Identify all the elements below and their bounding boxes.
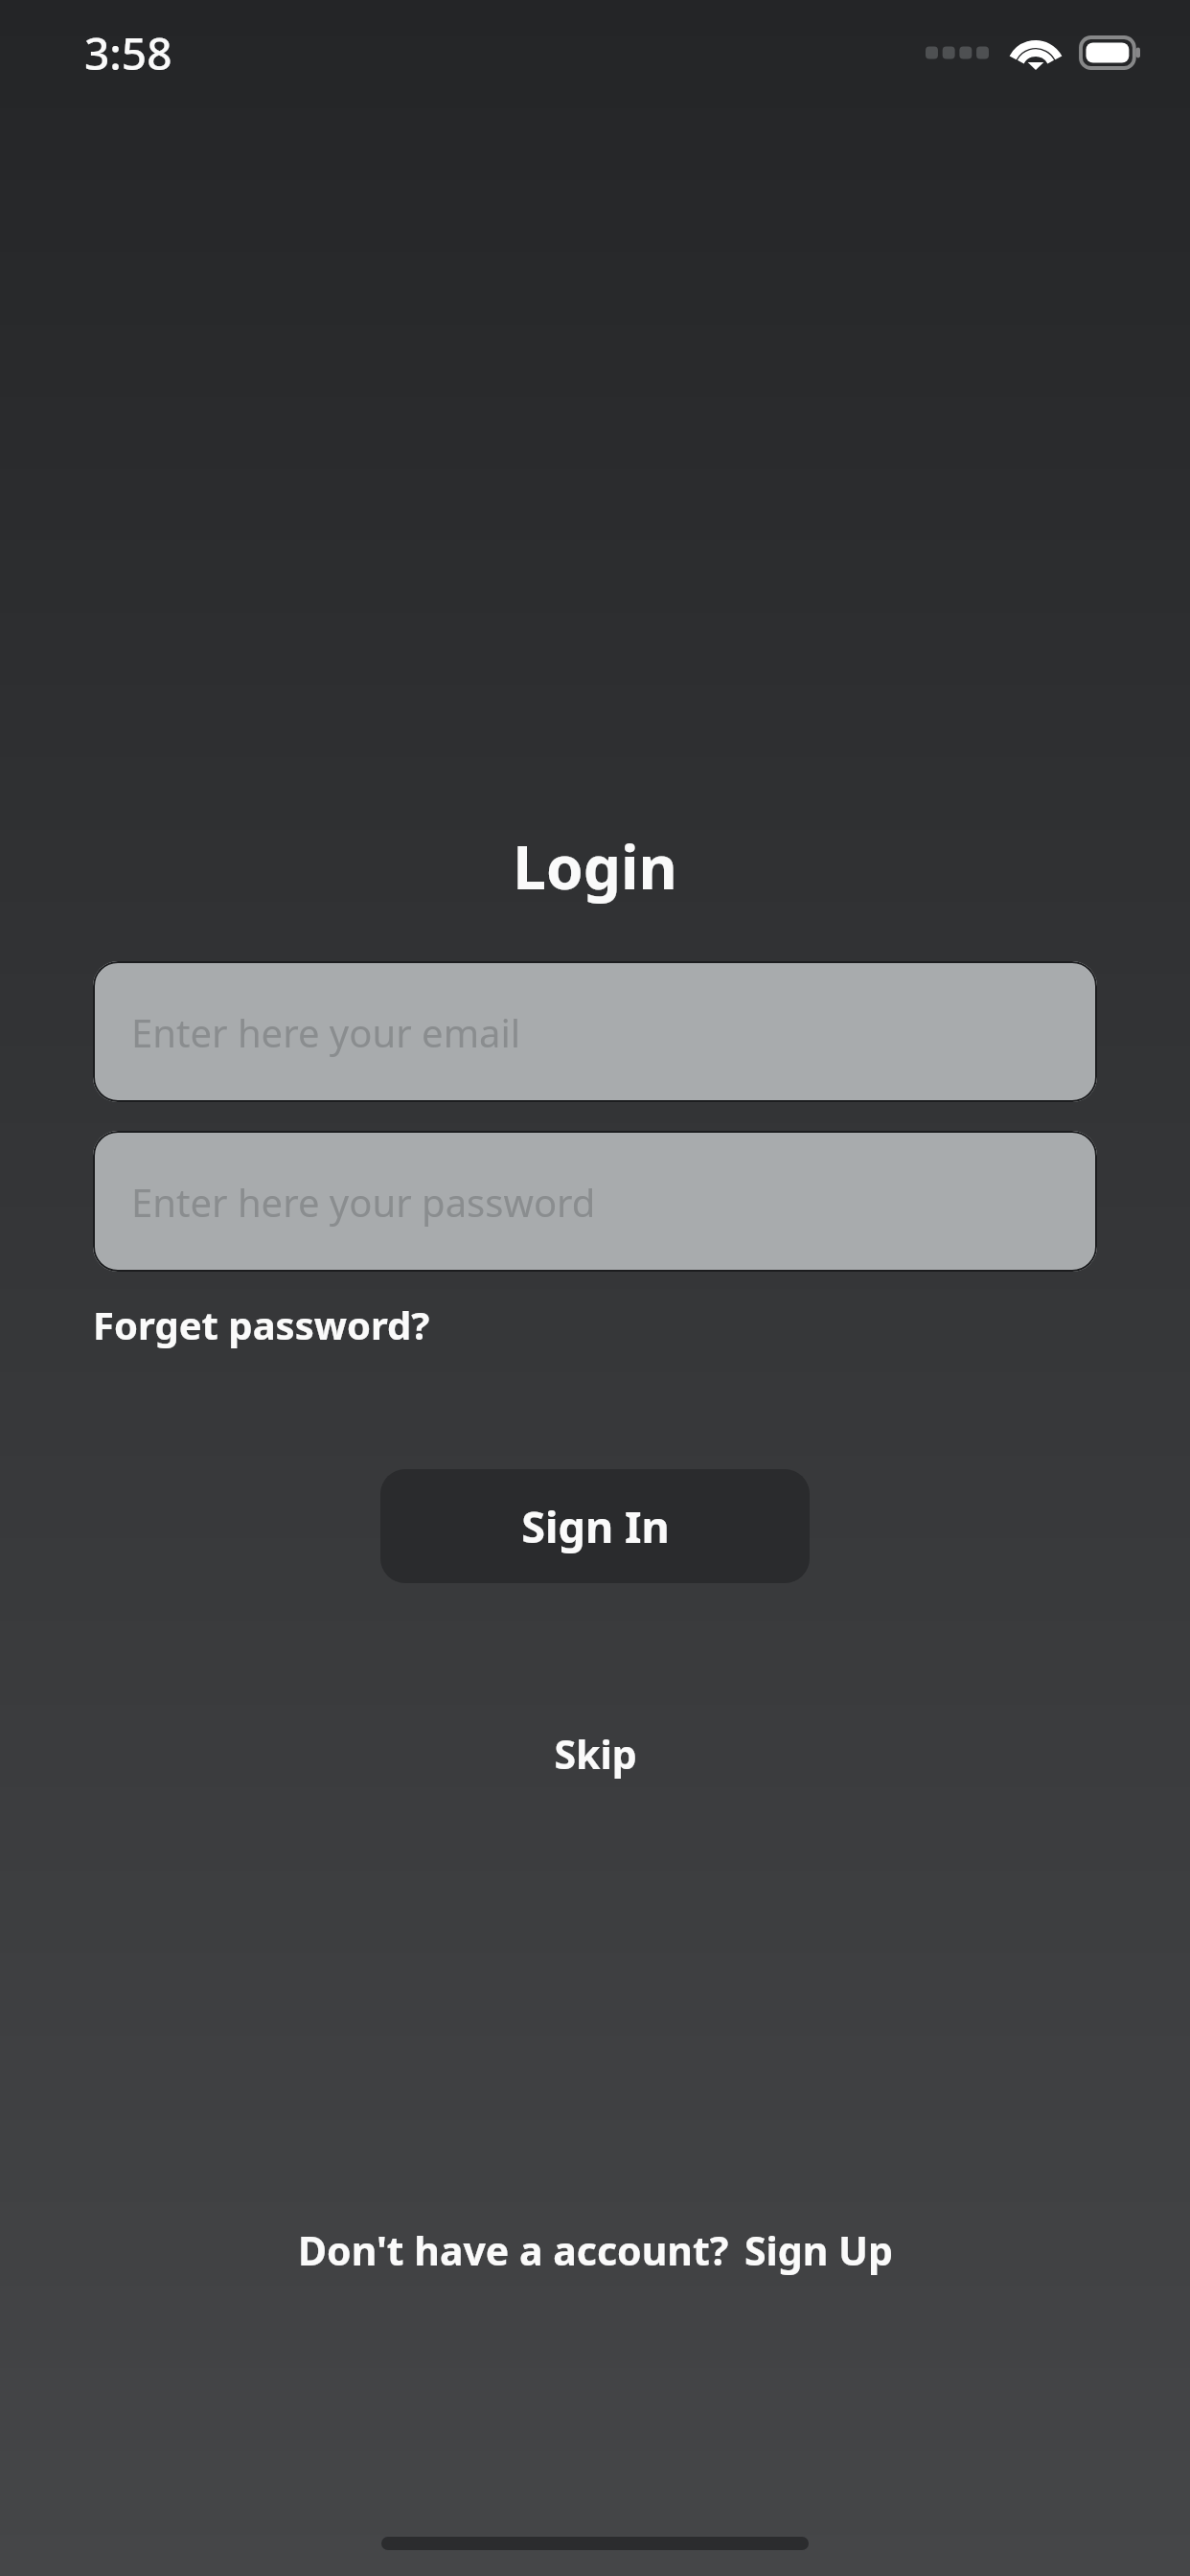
button[interactable]: Forget password? [93, 1293, 430, 1356]
staticText: Enter here your email [131, 1006, 521, 1058]
button[interactable]: Sign Up [744, 2223, 893, 2277]
staticText: Don't have a account? [298, 2223, 729, 2277]
staticText: Enter here your password [131, 1176, 596, 1228]
button[interactable]: Enter here your password [93, 1131, 1097, 1272]
staticText: Skip [554, 1727, 637, 1781]
staticText: Sign Up [744, 2223, 893, 2277]
button[interactable]: Enter here your email [93, 961, 1097, 1102]
button[interactable]: Sign In [380, 1469, 810, 1583]
staticText: Forget password? [93, 1299, 430, 1350]
button[interactable]: Skip [529, 1717, 662, 1790]
staticText: Sign In [521, 1497, 670, 1555]
staticText: Login [513, 826, 677, 907]
staticText: 3:58 [84, 23, 172, 83]
